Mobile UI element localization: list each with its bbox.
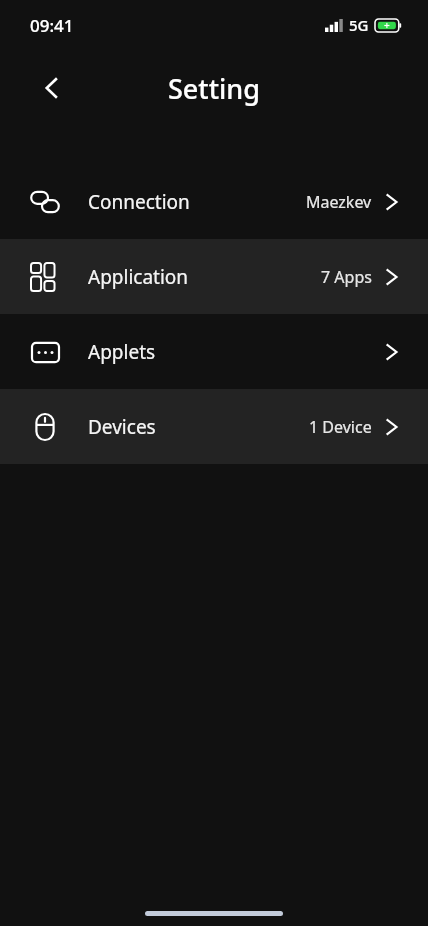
- button[interactable]: Devices: [0, 389, 428, 464]
- button[interactable]: Back: [24, 60, 80, 116]
- staticText: Applets: [88, 339, 156, 365]
- staticText: Application: [88, 264, 189, 290]
- staticText: Connection: [88, 189, 190, 215]
- button[interactable]: Application: [0, 239, 428, 314]
- button[interactable]: Connection: [0, 164, 428, 239]
- staticText: 7 Apps: [321, 266, 372, 288]
- staticText: 09:41: [30, 14, 74, 37]
- staticText: Maezkev: [306, 191, 372, 213]
- staticText: Setting: [168, 70, 260, 107]
- staticText: Devices: [88, 414, 156, 440]
- staticText: 1 Device: [309, 416, 372, 438]
- button[interactable]: Applets: [0, 314, 428, 389]
- staticText: 5G: [349, 15, 369, 35]
